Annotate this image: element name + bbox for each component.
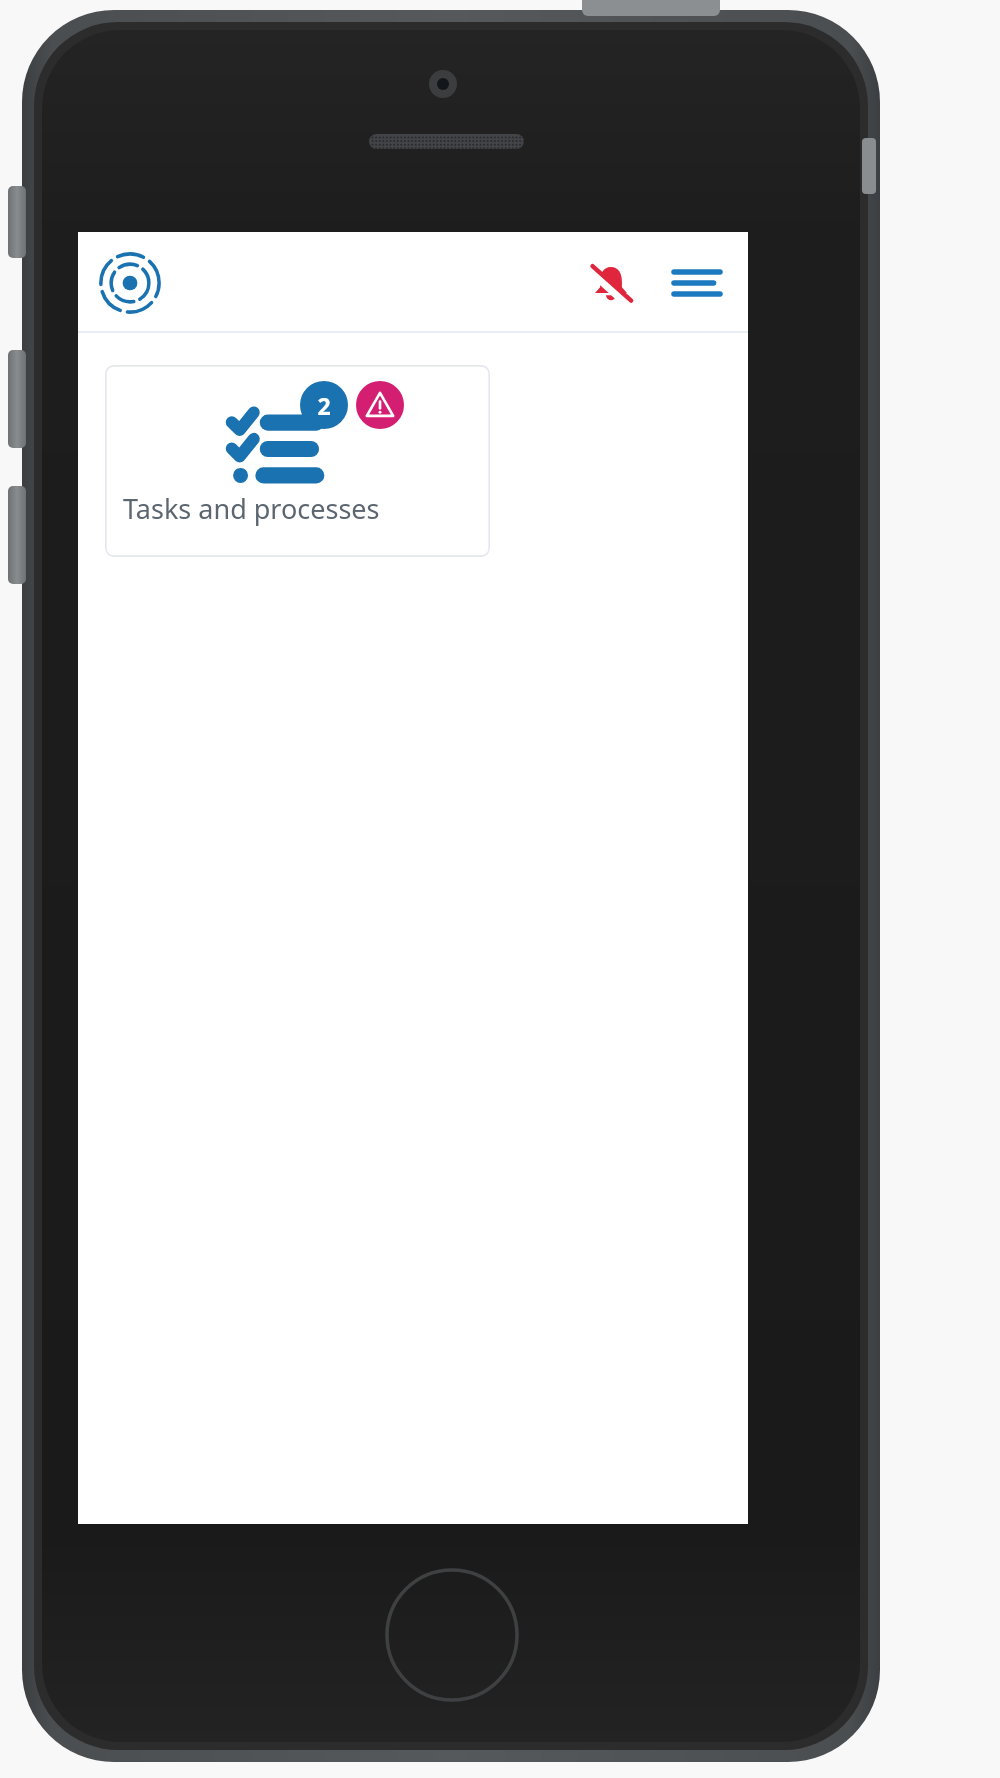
staticText: Tasks and processes [123,490,380,527]
staticText: 2 [317,390,331,421]
button[interactable]: Notifications muted [580,252,642,314]
button[interactable]: 2 [105,365,490,557]
button[interactable]: Home [92,245,168,321]
button[interactable]: Menu [666,252,728,314]
